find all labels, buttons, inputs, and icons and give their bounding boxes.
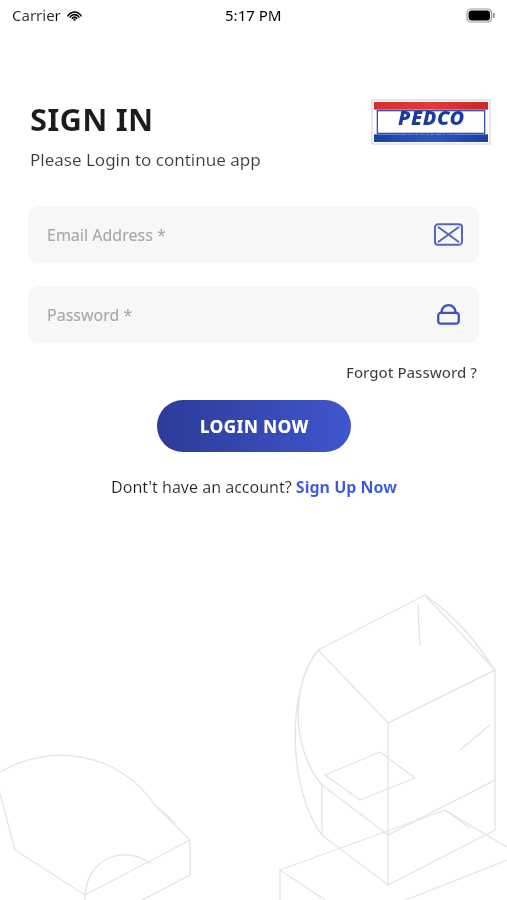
staticText: Dont't have an account? Sign Up Now bbox=[111, 476, 397, 498]
staticText: SIGN IN bbox=[30, 98, 154, 140]
other: Email bbox=[435, 221, 462, 248]
button[interactable]: Forgot Password ? bbox=[344, 360, 479, 384]
button[interactable]: Email Address * bbox=[28, 206, 479, 263]
button[interactable]: Dont't have an account? Sign Up Now bbox=[108, 473, 400, 501]
staticText: Email Address * bbox=[47, 224, 166, 246]
button[interactable]: LOGIN NOW bbox=[157, 400, 351, 452]
staticText: Password * bbox=[47, 304, 133, 326]
staticText: PEDCO bbox=[398, 104, 465, 131]
staticText: Carrier bbox=[12, 5, 61, 25]
staticText: Forgot Password ? bbox=[346, 362, 477, 382]
other: Password bbox=[435, 301, 462, 328]
button[interactable]: Password * bbox=[28, 286, 479, 343]
staticText: SUPPLY INC bbox=[406, 131, 457, 141]
staticText: LOGIN NOW bbox=[200, 415, 309, 438]
staticText: 5:17 PM bbox=[225, 5, 282, 25]
staticText: Please Login to continue app bbox=[30, 148, 261, 171]
